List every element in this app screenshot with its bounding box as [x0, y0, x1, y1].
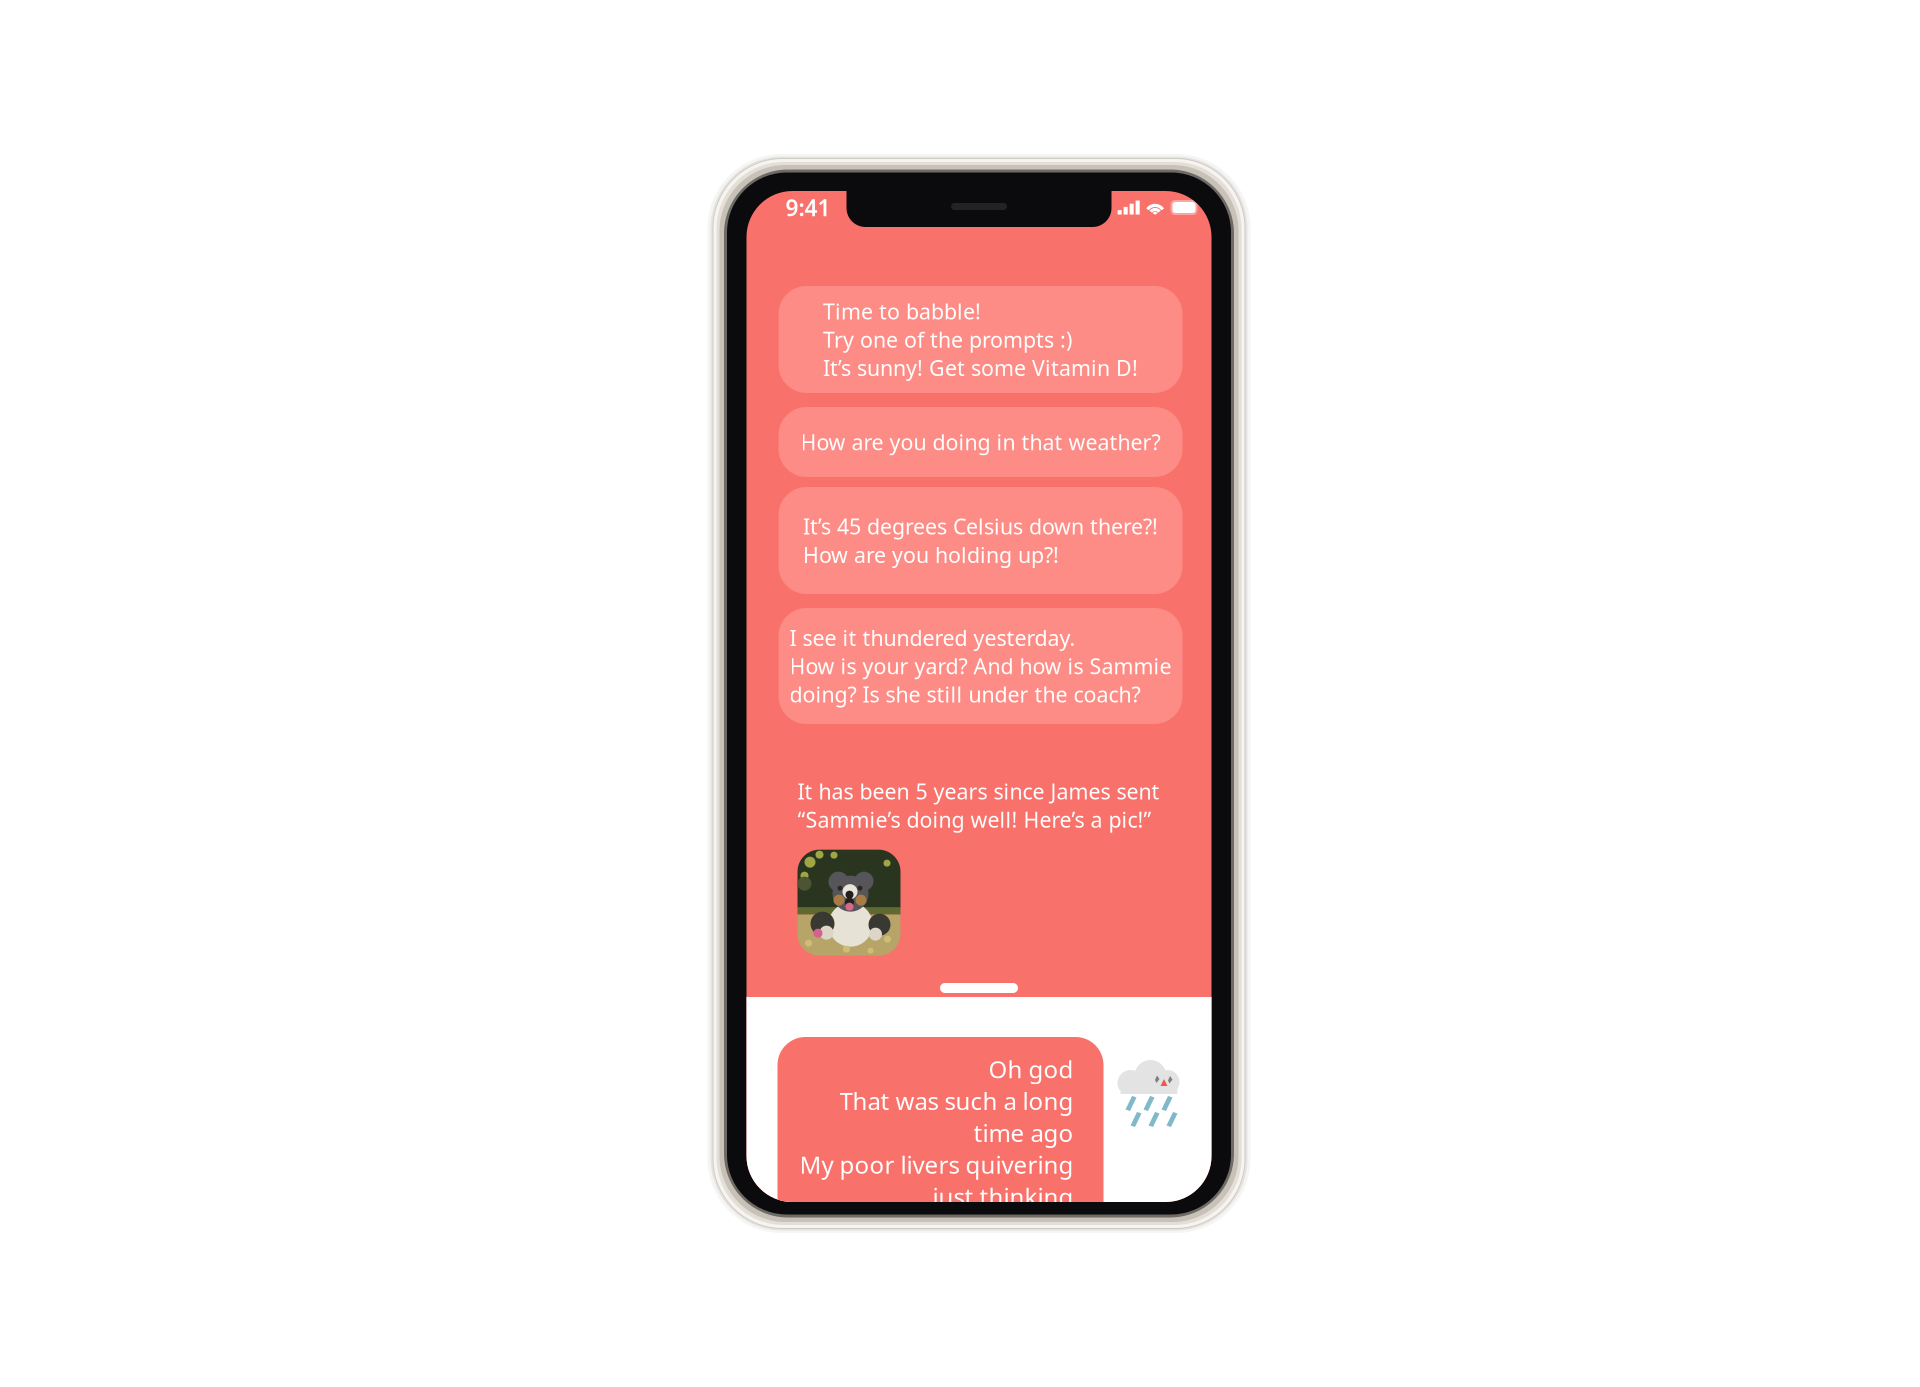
staticText: That was such a long [839, 1085, 1073, 1117]
staticText: time ago [973, 1117, 1073, 1149]
staticText: How are you holding up?! [803, 540, 1059, 569]
staticText: doing? Is she still under the coach? [789, 680, 1140, 708]
staticText: It’s sunny! Get some Vitamin D! [823, 354, 1138, 382]
button[interactable]: How are you doing in that weather? [778, 407, 1182, 477]
staticText: It has been 5 years since James sent [797, 777, 1159, 805]
staticText: My poor livers quivering [799, 1149, 1073, 1180]
staticText: I see it thundered yesterday. [789, 623, 1075, 652]
staticText: Oh god [988, 1053, 1073, 1085]
staticText: Time to babble! [823, 297, 981, 325]
button[interactable]: It’s 45 degrees Celsius down there?! [778, 487, 1182, 594]
button[interactable]: Oh god [777, 1037, 1103, 1230]
staticText: “Sammie’s doing well! Here’s a pic!” [797, 805, 1151, 834]
staticText: How are you doing in that weather? [800, 428, 1160, 456]
button[interactable]: I see it thundered yesterday. [778, 608, 1182, 724]
staticText: 9:41 [785, 192, 830, 222]
staticText: just thinking [932, 1180, 1073, 1212]
button[interactable]: Time to babble! [778, 286, 1182, 393]
staticText: Try one of the prompts :) [823, 325, 1072, 354]
button[interactable]: Photo of Sammie [797, 850, 900, 956]
staticText: It’s 45 degrees Celsius down there?! [803, 512, 1158, 540]
staticText: How is your yard? And how is Sammie [789, 652, 1171, 680]
